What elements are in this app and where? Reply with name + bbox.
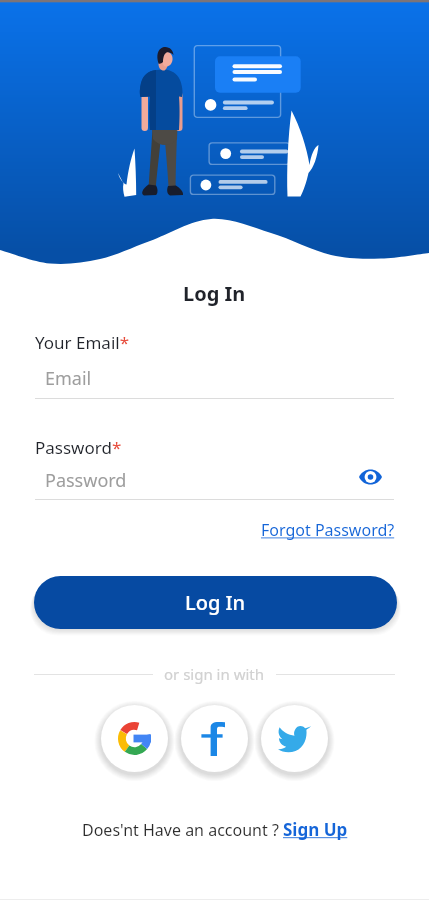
- staticText: Password: [45, 468, 127, 493]
- button[interactable]: Sign in with Google: [101, 705, 168, 772]
- staticText: Log In: [183, 280, 246, 307]
- button[interactable]: Sign Up: [283, 818, 348, 841]
- button[interactable]: Sign in with Twitter: [261, 705, 328, 772]
- staticText: or sign in with: [164, 664, 265, 684]
- staticText: Sign Up: [283, 818, 348, 841]
- button[interactable]: Sign in with Facebook: [181, 705, 248, 772]
- button[interactable]: Log In: [34, 576, 397, 629]
- staticText: Your Email*: [35, 331, 130, 354]
- button[interactable]: Show password: [355, 462, 385, 492]
- staticText: Email: [45, 366, 92, 391]
- staticText: Forgot Password?: [261, 519, 395, 541]
- staticText: Log In: [185, 589, 246, 616]
- staticText: Does'nt Have an account ?: [82, 819, 283, 841]
- staticText: Password*: [35, 436, 122, 459]
- button[interactable]: Forgot Password?: [261, 519, 395, 541]
